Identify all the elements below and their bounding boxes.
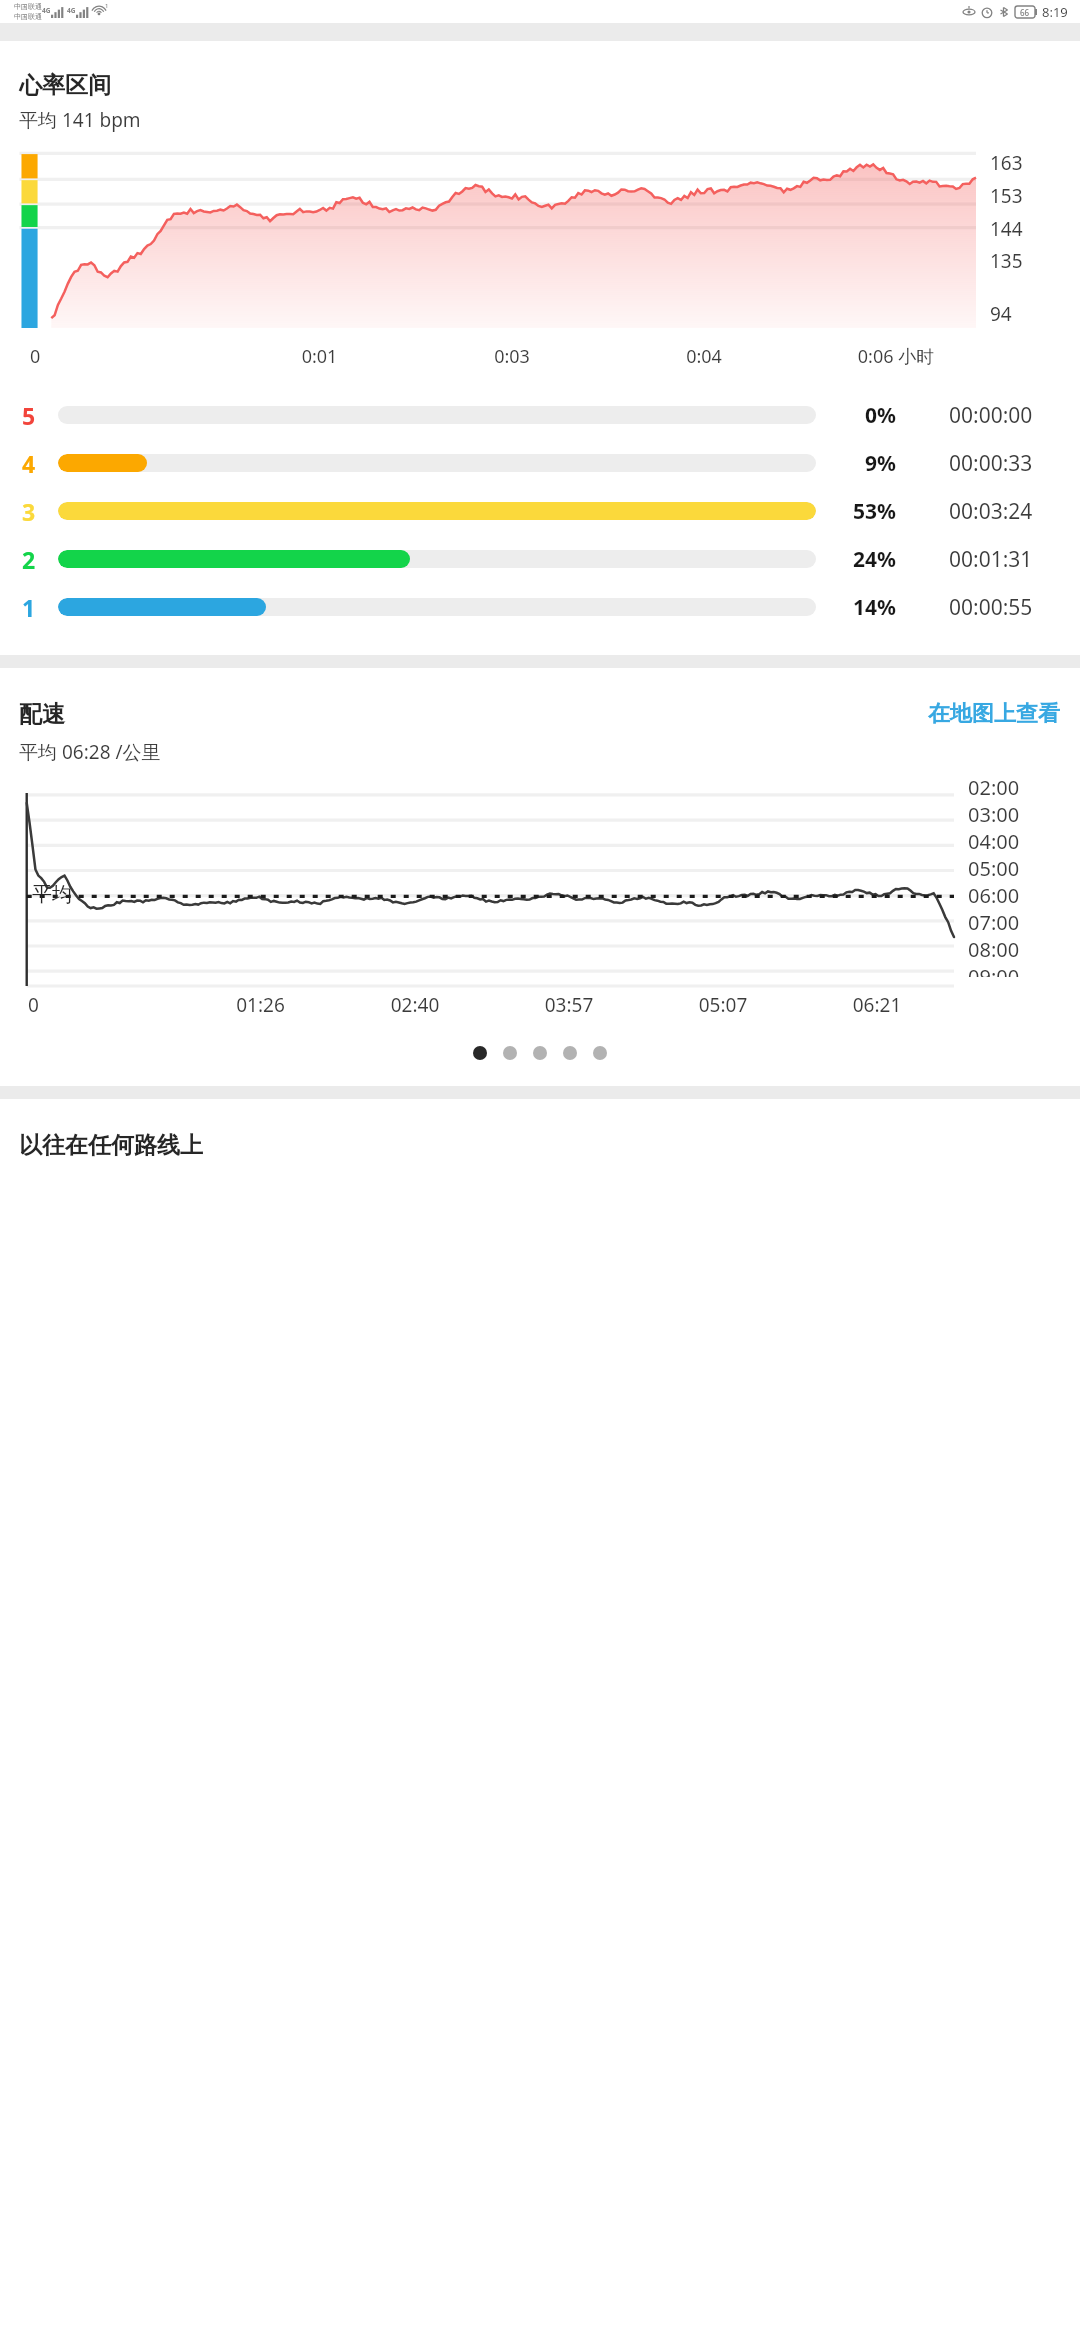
staticText: 3 [22,496,36,527]
staticText: 24% [853,545,896,574]
button[interactable]: 1 [0,583,1080,631]
button[interactable]: 4 [0,439,1080,487]
staticText: 163 [990,150,1023,176]
staticText: 以往在任何路线上 [19,1131,203,1160]
staticText: 00:00:55 [949,593,1033,622]
staticText: 1 [105,2,109,10]
button[interactable]: 在地图上查看 [924,696,1064,732]
staticText: 配速 [19,700,65,729]
staticText: 平均 06:28 /公里 [19,739,161,765]
staticText: 2 [22,544,36,575]
button[interactable]: Page 4 [563,1046,577,1060]
staticText: 0 [28,992,183,1018]
staticText: 1 [22,592,36,623]
staticText: 01:26 [183,992,338,1018]
staticText: 153 [990,183,1023,209]
staticText: 09:00 [968,963,1020,977]
staticText: 0 [30,344,223,369]
button[interactable]: 2 [0,535,1080,583]
staticText: 00:01:31 [949,545,1033,574]
staticText: 14% [853,593,896,622]
button[interactable]: 3 [0,487,1080,535]
staticText: 03:00 [968,801,1020,828]
staticText: 平均 [32,882,72,907]
staticText: 4G [42,6,51,15]
button[interactable]: Page 3 [533,1046,547,1060]
other: Hotspot [93,6,105,18]
staticText: 心率区间 [19,71,111,100]
staticText: 中国联通 [14,12,42,21]
button[interactable]: Page 2 [503,1046,517,1060]
staticText: 02:00 [968,774,1020,801]
staticText: 00:00:33 [949,449,1033,478]
staticText: 05:07 [646,992,800,1018]
staticText: 06:21 [800,992,954,1018]
button[interactable]: 5 [0,391,1080,439]
staticText: 9% [865,449,896,478]
staticText: 0:06 小时 [800,344,992,369]
button[interactable]: Page 1 [473,1046,487,1060]
staticText: 0:03 [416,344,608,369]
staticText: 中国联通 [14,2,42,11]
staticText: 00:00:00 [949,401,1033,430]
staticText: 66 [1020,7,1030,18]
staticText: 144 [990,216,1023,242]
staticText: 4 [22,448,36,479]
staticText: 0:04 [608,344,800,369]
staticText: 04:00 [968,828,1020,855]
staticText: 53% [853,497,896,526]
staticText: 07:00 [968,909,1020,936]
staticText: 02:40 [338,992,492,1018]
staticText: 08:00 [968,936,1020,963]
staticText: 03:57 [492,992,646,1018]
staticText: 4G [67,6,76,15]
staticText: 5 [22,400,36,431]
staticText: 94 [990,301,1012,327]
staticText: 06:00 [968,882,1020,909]
staticText: 00:03:24 [949,497,1033,526]
staticText: 平均 141 bpm [19,107,141,133]
staticText: 8:19 [1042,3,1068,21]
staticText: 0% [865,401,896,430]
button[interactable]: Page 5 [593,1046,607,1060]
staticText: 0:01 [223,344,416,369]
staticText: 135 [990,248,1023,274]
staticText: 在地图上查看 [928,700,1060,728]
staticText: 05:00 [968,855,1020,882]
